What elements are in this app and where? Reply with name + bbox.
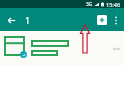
staticText: 1 [25, 14, 31, 26]
button[interactable]: More options [110, 14, 122, 26]
staticText: text [112, 46, 120, 51]
staticText: 15:46 [106, 1, 121, 8]
button[interactable]: text [0, 31, 124, 65]
button[interactable]: Archive [94, 12, 110, 28]
button[interactable]: Back [4, 13, 18, 27]
staticText: 3G [86, 1, 93, 8]
